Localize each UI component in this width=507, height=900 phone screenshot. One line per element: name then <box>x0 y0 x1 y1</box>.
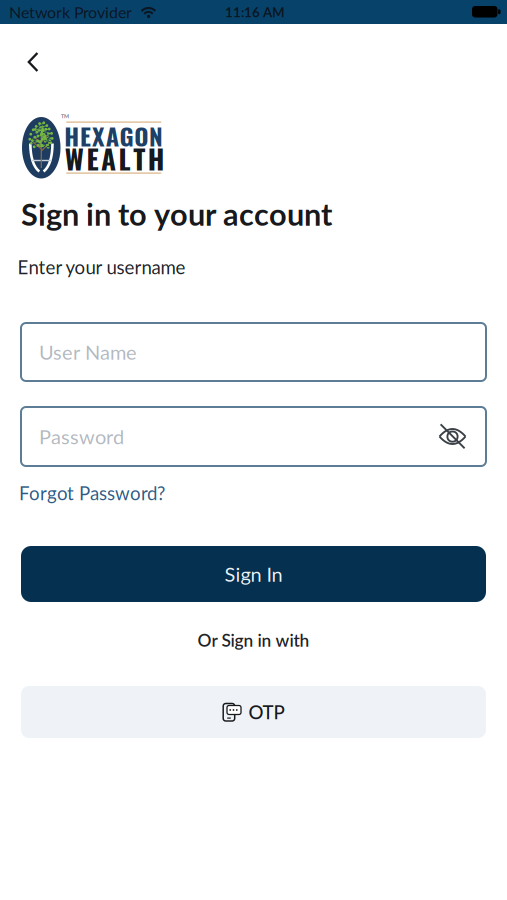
button[interactable]: Sign In <box>21 546 486 602</box>
staticText: E <box>80 117 91 153</box>
staticText: H <box>148 138 165 178</box>
staticText: W <box>65 138 84 178</box>
staticText: 11:16 AM <box>225 4 285 20</box>
staticText: A <box>101 138 116 178</box>
staticText: E <box>86 138 98 178</box>
button[interactable]: User Name <box>21 323 486 381</box>
staticText: A <box>106 117 119 153</box>
button[interactable] <box>438 423 467 449</box>
staticText: Password <box>39 425 124 448</box>
button[interactable]: Forgot Password? <box>0 0 165 504</box>
staticText: User Name <box>39 340 137 364</box>
staticText: T <box>133 138 145 178</box>
button[interactable] <box>0 0 52 82</box>
staticText: OTP <box>248 701 284 723</box>
staticText: Enter your username <box>17 256 185 278</box>
staticText: X <box>92 117 105 153</box>
staticText: TM <box>61 113 69 119</box>
staticText: L <box>119 138 131 178</box>
button[interactable]: Password <box>21 407 486 466</box>
staticText: N <box>149 117 163 153</box>
staticText: Sign In <box>224 562 282 586</box>
staticText: Forgot Password? <box>19 482 165 504</box>
staticText: G <box>119 117 133 153</box>
staticText: Or Sign in with <box>197 630 309 650</box>
staticText: O <box>134 117 148 153</box>
button[interactable]: OTP <box>21 686 486 738</box>
staticText: Network Provider <box>9 3 132 21</box>
staticText: H <box>64 117 79 153</box>
staticText: Sign in to your account <box>21 196 332 232</box>
